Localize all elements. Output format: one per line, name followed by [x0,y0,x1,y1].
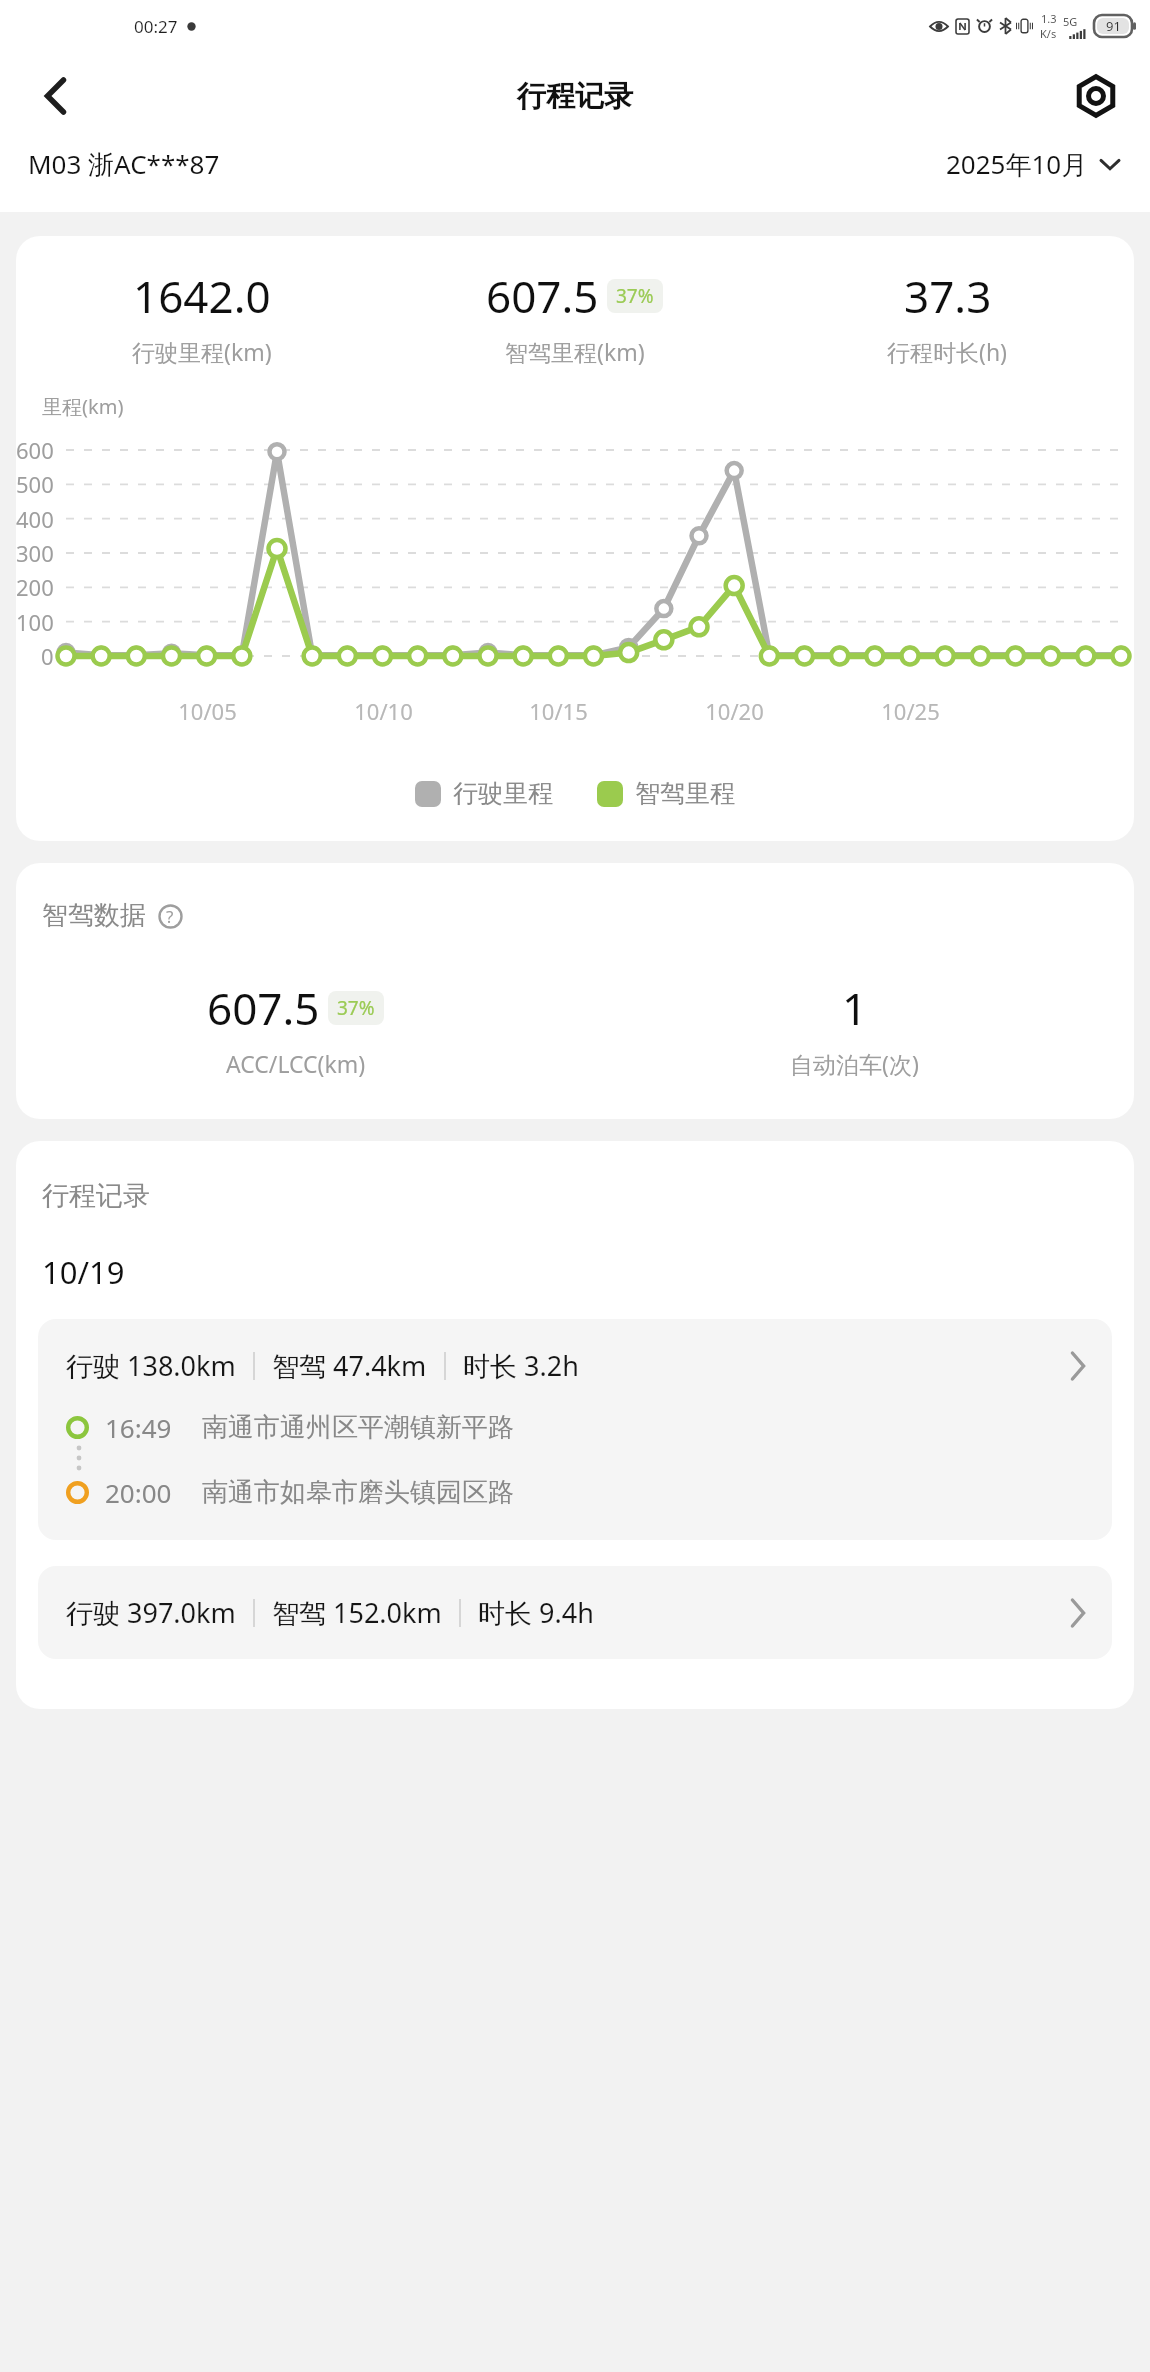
staticText: 行程记录 [517,78,633,115]
staticText: 5G [1063,14,1078,29]
staticText: 1 [842,978,868,1038]
staticText: 时长 9.4h [478,1594,594,1631]
button[interactable]: 智驾里程 [593,774,739,813]
staticText: 10/25 [881,696,940,726]
staticText: 20:00 [105,1475,172,1510]
staticText: 10/10 [354,696,413,726]
button[interactable]: 行驶 397.0km [38,1566,1112,1659]
staticText: 91 [1106,17,1121,35]
staticText: 行驶里程(km) [132,336,272,367]
staticText: M03 浙AC***87 [28,146,220,182]
staticText: 2025年10月 [946,146,1088,182]
button[interactable]: 2025年10月 [940,140,1126,188]
staticText: 智驾 47.4km [272,1347,427,1384]
button[interactable]: Back [26,67,84,125]
staticText: 37.3 [904,266,992,326]
staticText: 200 [16,572,54,602]
staticText: 行程记录 [42,1179,150,1213]
staticText: 00:27 [134,15,178,38]
staticText: 南通市通州区平潮镇新平路 [202,1411,514,1444]
button[interactable]: 行驶 138.0km [38,1319,1112,1540]
staticText: 37% [337,995,375,1021]
staticText: 智驾里程 [635,778,735,809]
staticText: 100 [16,607,54,637]
staticText: 智驾 152.0km [272,1594,442,1631]
staticText: 16:49 [105,1410,172,1445]
staticText: K/s [1040,26,1057,41]
staticText: 智驾数据 [42,899,146,932]
staticText: 行驶里程 [453,778,553,809]
staticText: 自动泊车(次) [790,1048,919,1079]
staticText: ? [166,905,174,928]
staticText: 400 [16,504,54,534]
staticText: ACC/LCC(km) [226,1048,366,1079]
staticText: 10/05 [178,696,237,726]
staticText: 智驾里程(km) [505,336,645,367]
staticText: 行驶 397.0km [66,1594,236,1631]
staticText: 300 [16,538,54,568]
button[interactable]: 行驶里程 [411,774,557,813]
staticText: 10/20 [705,696,764,726]
staticText: 10/15 [529,696,588,726]
staticText: 607.5 [207,978,320,1038]
staticText: 37% [616,283,654,309]
staticText: 0 [41,641,54,671]
staticText: 行程时长(h) [887,336,1008,367]
button[interactable]: Settings [1066,66,1126,126]
staticText: 1642.0 [133,266,271,326]
staticText: 500 [16,469,54,499]
staticText: 时长 3.2h [463,1347,579,1384]
staticText: 1.3 [1041,11,1057,26]
button[interactable]: Help [154,900,186,932]
staticText: 南通市如皋市磨头镇园区路 [202,1476,514,1509]
staticText: 607.5 [486,266,599,326]
staticText: 行驶 138.0km [66,1347,236,1384]
staticText: 里程(km) [42,393,124,420]
staticText: 10/19 [42,1251,125,1293]
staticText: 600 [16,435,54,465]
